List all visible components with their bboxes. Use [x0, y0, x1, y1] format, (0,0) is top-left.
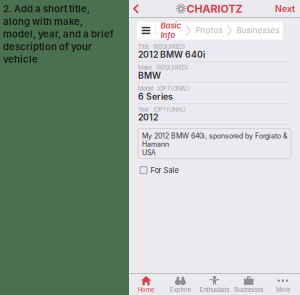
staticText: 2012 — [138, 112, 158, 123]
staticText: Enthusiasts — [199, 286, 229, 293]
staticText: Businesses — [237, 26, 280, 35]
staticText: Make (REQUIRED) — [138, 64, 188, 71]
staticText: model, year, and a brief — [3, 28, 114, 40]
staticText: Photos — [196, 26, 223, 35]
staticText: USA — [142, 148, 156, 157]
staticText: Model (OPTIONAL) — [138, 85, 190, 92]
button[interactable]: Businesses — [232, 274, 266, 295]
staticText: along with make, — [3, 16, 83, 27]
button[interactable]: Photos — [191, 21, 227, 39]
staticText: More — [276, 286, 290, 293]
button[interactable]: More — [266, 274, 300, 295]
staticText: Basic Info — [161, 21, 182, 40]
button[interactable]: Home — [129, 274, 163, 295]
staticText: Next — [275, 3, 295, 14]
staticText: My 2012 BMW 640i, sponsored by Forgiato … — [142, 132, 287, 148]
button[interactable]: Back — [129, 0, 143, 17]
staticText: description of your — [3, 41, 92, 52]
button[interactable]: Menu — [137, 21, 155, 39]
button[interactable]: For Sale — [140, 164, 178, 177]
staticText: Businesses — [234, 286, 263, 293]
staticText: 2012 BMW 640i — [138, 49, 205, 60]
staticText: CHARIOTZ — [186, 2, 242, 15]
button[interactable]: Enthusiasts — [197, 274, 232, 295]
staticText: Explore — [170, 286, 191, 293]
staticText: Year (OPTIONAL) — [138, 106, 186, 113]
staticText: vehicle — [3, 53, 38, 65]
staticText: BMW — [138, 70, 161, 81]
button[interactable]: Businesses — [232, 21, 283, 39]
staticText: 2. Add a short title, — [3, 3, 90, 15]
staticText: For Sale — [150, 166, 178, 175]
staticText: Home — [138, 286, 154, 293]
staticText: 6 Series — [138, 91, 173, 102]
staticText: Title (REQUIRED) — [138, 43, 185, 50]
button[interactable]: Explore — [163, 274, 197, 295]
button[interactable]: Basic Info — [156, 21, 186, 39]
button[interactable]: Next — [275, 0, 300, 17]
